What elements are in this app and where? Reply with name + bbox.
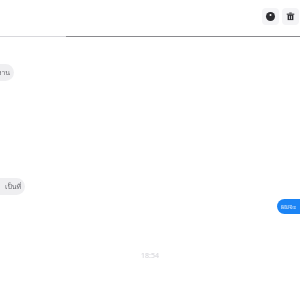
staticText: งาน [0, 67, 11, 78]
staticText: ผมจะ [281, 202, 297, 212]
staticText: เป็นที่ [5, 181, 22, 192]
button[interactable]: เป็นที่ [0, 178, 25, 195]
button[interactable]: Info [262, 8, 279, 25]
staticText: 18:54 [141, 251, 159, 261]
button[interactable]: ผมจะ [277, 199, 300, 214]
button[interactable]: Delete [282, 8, 299, 25]
button[interactable]: งาน [0, 64, 14, 81]
